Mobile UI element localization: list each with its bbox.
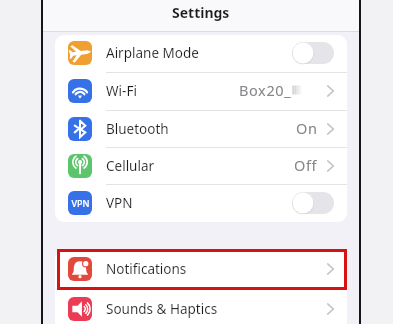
staticText: Sounds & Haptics <box>106 300 218 318</box>
staticText: Notifications <box>106 260 187 278</box>
button[interactable]: Airplane Mode <box>55 35 347 73</box>
staticText: Off <box>294 155 318 175</box>
staticText: VPN <box>71 197 90 209</box>
button[interactable]: VPN <box>55 185 347 222</box>
button[interactable]: Cellular <box>55 148 347 185</box>
staticText: Cellular <box>106 157 155 175</box>
button[interactable]: Sounds & Haptics <box>55 290 347 324</box>
button[interactable]: Toggle <box>292 42 334 64</box>
staticText: On <box>296 118 318 138</box>
staticText: Box20_ <box>239 80 292 100</box>
button[interactable]: Bluetooth <box>55 111 347 148</box>
staticText: Airplane Mode <box>106 44 199 62</box>
button[interactable]: Toggle <box>292 192 334 214</box>
staticText: Settings <box>172 3 230 22</box>
button[interactable]: Notifications <box>55 250 347 290</box>
staticText: Wi-Fi <box>106 82 137 100</box>
staticText: VPN <box>106 194 133 212</box>
staticText: Bluetooth <box>106 120 169 138</box>
button[interactable]: Wi-Fi <box>55 73 347 111</box>
